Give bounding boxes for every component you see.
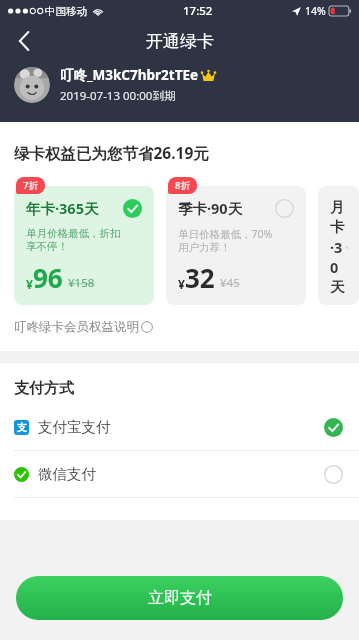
staticText: 2019-07-13 00:00到期 (60, 88, 176, 104)
staticText: 微信支付 (38, 465, 96, 483)
staticText: 14% (305, 4, 326, 18)
staticText: ¥ (26, 276, 33, 292)
staticText: ¥45 (220, 275, 240, 291)
button[interactable]: 立即支付 (16, 576, 343, 620)
staticText: 17:52 (183, 3, 213, 19)
staticText: 用户力荐！ (178, 241, 231, 254)
staticText: 单日价格最低，70% (178, 227, 273, 241)
button[interactable]: 叮咚_M3kC7hbr2tTEe (14, 66, 359, 104)
button[interactable]: 年卡·365天 (14, 186, 154, 305)
staticText: 7折 (23, 179, 38, 192)
staticText: 中国移动 (45, 5, 87, 18)
staticText: 支 (17, 421, 27, 434)
staticText: 8折 (175, 179, 190, 192)
staticText: 32 (185, 260, 215, 295)
staticText: 支付宝支付 (38, 418, 111, 436)
staticText: 96 (33, 260, 63, 295)
staticText: 支付方式 (14, 379, 74, 398)
staticText: 享不停！ (26, 240, 68, 253)
staticText: 季卡·90天 (178, 198, 243, 218)
button[interactable]: 叮咚绿卡会员权益说明 (14, 319, 153, 335)
staticText: 叮咚绿卡会员权益说明 (14, 319, 139, 335)
staticText: 叮咚_M3kC7hbr2tTEe (60, 66, 199, 84)
staticText: 年卡·365天 (26, 198, 99, 218)
staticText: 绿卡权益已为您节省26.19元 (14, 142, 209, 163)
staticText: ¥ (178, 276, 185, 292)
staticText: 单月价格最低，折扣 (26, 227, 121, 240)
button[interactable]: 微信支付 (0, 451, 359, 497)
staticText: 开通绿卡 (146, 31, 214, 52)
button[interactable]: 季卡·90天 (166, 186, 306, 305)
button[interactable]: 月卡·30天 (318, 186, 359, 305)
button[interactable]: Back (4, 22, 44, 60)
staticText: ¥158 (68, 275, 95, 291)
button[interactable]: 支 (0, 404, 359, 450)
staticText: 立即支付 (148, 588, 212, 608)
staticText: 月卡·30天 (330, 198, 347, 296)
